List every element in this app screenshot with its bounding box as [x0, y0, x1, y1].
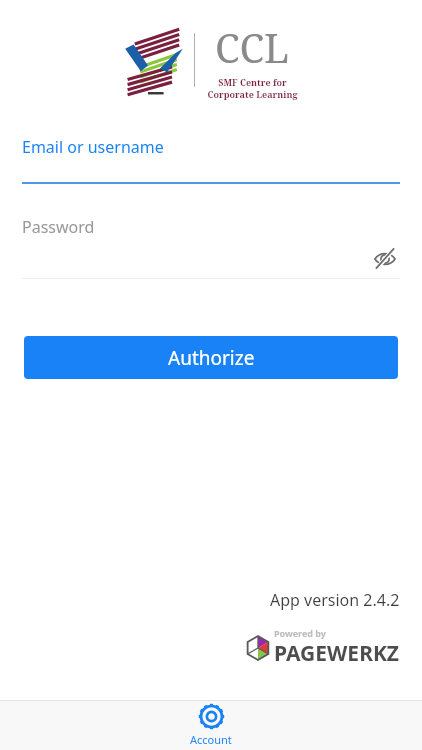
button[interactable]: Account [190, 703, 232, 747]
staticText: Password [22, 216, 95, 238]
other: Account [198, 703, 225, 730]
staticText: Corporate Learning [207, 88, 298, 100]
button[interactable]: Show password [370, 244, 400, 274]
button[interactable]: Email or username [22, 136, 400, 184]
button[interactable]: Authorize [24, 336, 398, 379]
staticText: Powered by [274, 627, 327, 639]
staticText: SMF Centre for [218, 76, 287, 88]
staticText: PAGEWERKZ [274, 639, 400, 668]
staticText: App version 2.4.2 [270, 589, 400, 611]
staticText: CCL [215, 20, 290, 74]
staticText: Account [190, 732, 232, 747]
button[interactable]: Password [22, 216, 400, 238]
staticText: Authorize [168, 345, 255, 371]
staticText: Email or username [22, 136, 164, 158]
